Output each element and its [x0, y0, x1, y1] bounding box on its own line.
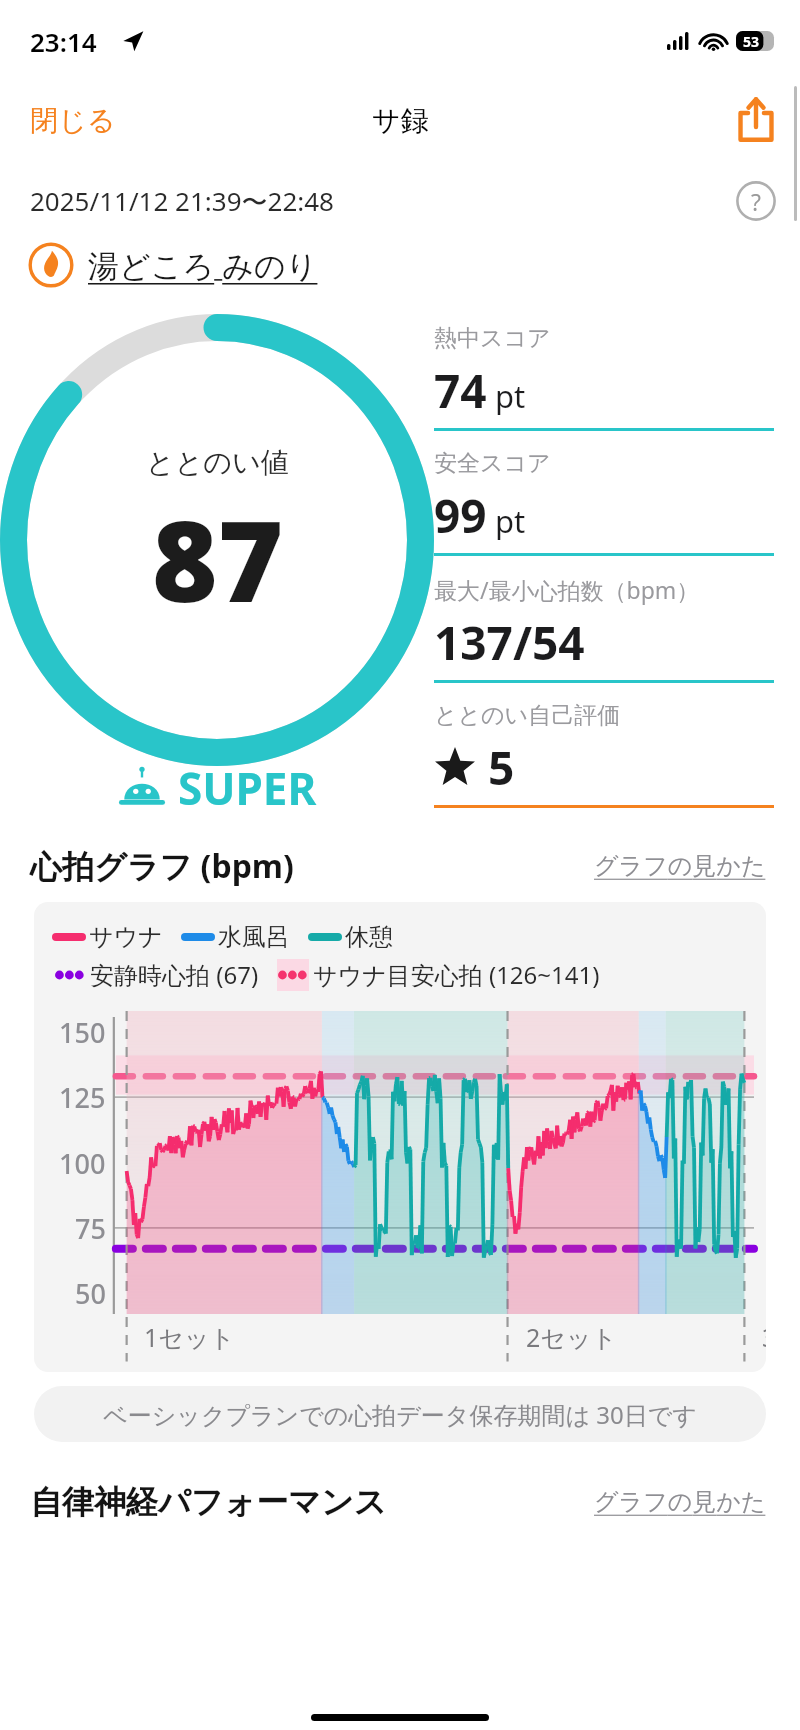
staticText: 自律神経パフォーマンス	[30, 1482, 387, 1522]
staticText: 100	[59, 1145, 106, 1182]
staticText: 2セット	[526, 1320, 618, 1354]
button[interactable]: ベーシックプランでの心拍データ保存期間は 30日です	[34, 1386, 766, 1442]
staticText: pt	[495, 500, 526, 542]
button[interactable]: グラフの見かた	[590, 1483, 770, 1521]
staticText: 1セット	[144, 1320, 236, 1354]
staticText: 150	[59, 1014, 106, 1051]
staticText: グラフの見かた	[594, 851, 766, 881]
button[interactable]: 湯どころ みのり	[0, 238, 800, 292]
staticText: 最大/最小心拍数（bpm）	[434, 574, 700, 605]
button[interactable]: グラフの見かた	[590, 847, 770, 885]
staticText: ベーシックプランでの心拍データ保存期間は 30日です	[103, 1398, 697, 1431]
staticText: 閉じる	[30, 103, 116, 138]
staticText: サウナ目安心拍 (126~141)	[313, 958, 600, 991]
button[interactable]: Help	[736, 181, 776, 221]
staticText: グラフの見かた	[594, 1487, 766, 1517]
staticText: 125	[59, 1079, 106, 1116]
staticText: 熱中スコア	[434, 324, 551, 353]
button[interactable]: ととのい自己評価	[434, 683, 774, 808]
staticText: 87	[152, 482, 284, 635]
staticText: 137/54	[434, 611, 585, 674]
staticText: 心拍グラフ (bpm)	[30, 844, 294, 888]
staticText: サ録	[372, 103, 429, 138]
staticText: SUPER	[178, 758, 317, 818]
staticText: 53	[743, 32, 760, 51]
button[interactable]: 最大/最小心拍数（bpm）	[434, 556, 774, 683]
staticText: サウナ	[89, 922, 163, 952]
staticText: 安静時心拍 (67)	[90, 958, 259, 991]
button[interactable]: 閉じる	[0, 91, 146, 150]
button[interactable]: 安全スコア	[434, 431, 774, 556]
staticText: ?	[751, 186, 761, 217]
staticText: ととのい自己評価	[434, 701, 621, 730]
staticText: 75	[75, 1210, 106, 1247]
staticText: 水風呂	[218, 922, 290, 952]
staticText: 99	[434, 484, 487, 547]
staticText: ととのい値	[146, 445, 289, 480]
staticText: 安全スコア	[434, 449, 551, 478]
button[interactable]: Share	[712, 92, 800, 148]
staticText: 2025/11/12 21:39〜22:48	[30, 183, 334, 219]
staticText: 23:14	[30, 24, 97, 59]
staticText: pt	[495, 375, 526, 417]
staticText: 74	[434, 359, 487, 422]
staticText: 3	[762, 1320, 766, 1354]
staticText: 休憩	[345, 922, 393, 952]
staticText: 50	[75, 1275, 106, 1312]
button[interactable]: 熱中スコア	[434, 306, 774, 431]
staticText: 湯どころ みのり	[88, 244, 318, 286]
staticText: 5	[488, 736, 515, 799]
